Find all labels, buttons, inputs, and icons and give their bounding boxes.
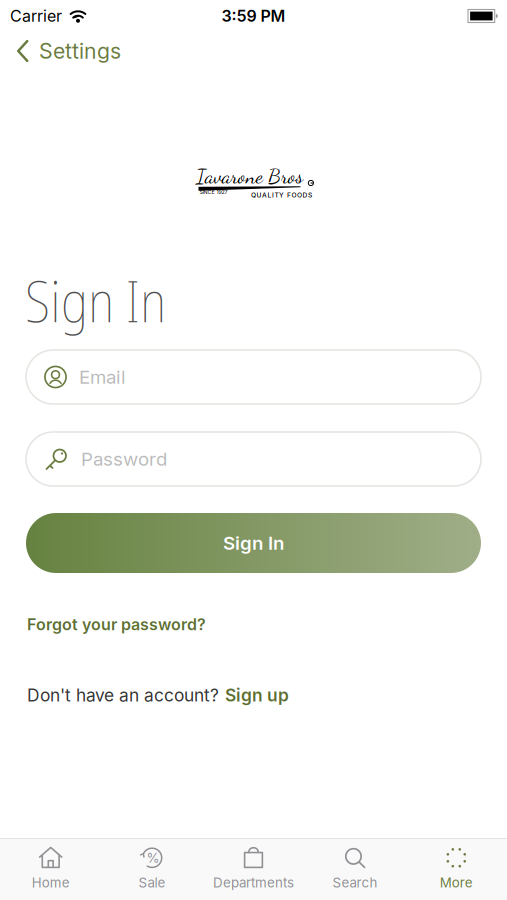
staticText: Sign In	[25, 261, 166, 339]
staticText: More	[440, 875, 473, 890]
button[interactable]: %	[101, 846, 203, 890]
staticText: Sign In	[223, 532, 284, 554]
staticText: SINCE 1927	[199, 189, 227, 195]
button[interactable]: Sign up	[225, 685, 289, 705]
button[interactable]: Sign In	[26, 513, 481, 573]
staticText: Sign up	[225, 685, 289, 705]
button[interactable]: Search	[304, 846, 406, 890]
staticText: Don't have an account?	[27, 685, 219, 705]
staticText: Iavarone Bros	[196, 164, 303, 188]
staticText: QUALITY FOODS	[251, 191, 312, 199]
staticText: Home	[32, 875, 70, 890]
staticText: Password	[81, 448, 167, 470]
button[interactable]: More	[406, 846, 507, 890]
staticText: Sale	[139, 875, 166, 890]
staticText: Carrier	[10, 7, 62, 25]
staticText: Departments	[213, 875, 294, 890]
textField[interactable]: Password	[26, 432, 481, 486]
button[interactable]: Back to Settings	[16, 38, 121, 64]
textField[interactable]: Email	[26, 350, 481, 404]
staticText: Email	[79, 366, 126, 388]
button[interactable]: Departments	[203, 846, 304, 890]
button[interactable]: Home	[0, 846, 101, 890]
staticText: Settings	[39, 38, 121, 64]
staticText: Forgot your password?	[27, 615, 206, 634]
staticText: %	[147, 850, 160, 866]
staticText: Search	[332, 875, 377, 890]
staticText: 3:59 PM	[221, 7, 285, 25]
button[interactable]: Forgot your password?	[27, 615, 206, 634]
